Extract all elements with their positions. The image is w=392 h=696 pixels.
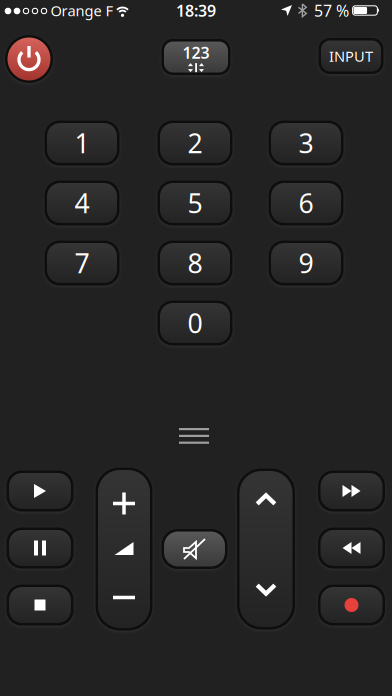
staticText: 1 — [74, 125, 89, 161]
staticText: 7 — [74, 245, 89, 281]
staticText: 4 — [74, 185, 89, 221]
button[interactable]: Rewind — [318, 527, 385, 568]
button[interactable]: 7 — [44, 240, 119, 285]
staticText: 57 % — [314, 0, 349, 21]
staticText: 3 — [298, 125, 313, 161]
button[interactable]: 9 — [268, 240, 343, 285]
button[interactable]: 6 — [268, 180, 343, 225]
button[interactable]: INPUT — [318, 38, 383, 74]
button[interactable]: Volume up — [98, 481, 150, 525]
staticText: 18:39 — [176, 0, 216, 21]
button[interactable]: 2 — [157, 120, 232, 165]
button[interactable]: Pause — [6, 527, 73, 568]
button[interactable]: Record — [318, 584, 385, 625]
staticText: 2 — [187, 125, 202, 161]
button[interactable]: Volume — [98, 533, 150, 563]
button[interactable]: Mute — [161, 529, 227, 569]
button[interactable]: 0 — [157, 300, 232, 345]
button[interactable]: Fast forward — [318, 470, 385, 511]
button[interactable]: Power — [5, 35, 53, 83]
staticText: 5 — [187, 185, 202, 221]
staticText: 8 — [187, 245, 202, 281]
button[interactable]: Number pad mode — [161, 39, 230, 75]
button[interactable]: Channel up — [239, 471, 292, 527]
button[interactable]: Channel down — [239, 561, 292, 617]
staticText: 123 — [182, 42, 209, 63]
button[interactable]: 1 — [44, 120, 119, 165]
staticText: 9 — [298, 245, 313, 281]
button[interactable]: Stop — [6, 584, 73, 625]
staticText: Orange F — [50, 1, 113, 20]
staticText: 6 — [298, 185, 313, 221]
button[interactable]: 8 — [157, 240, 232, 285]
staticText: INPUT — [329, 46, 373, 66]
button[interactable]: 5 — [157, 180, 232, 225]
staticText: 0 — [187, 305, 202, 341]
button[interactable]: Volume down — [98, 575, 150, 619]
button[interactable]: 3 — [268, 120, 343, 165]
button[interactable]: 4 — [44, 180, 119, 225]
button[interactable]: Play — [6, 470, 73, 511]
